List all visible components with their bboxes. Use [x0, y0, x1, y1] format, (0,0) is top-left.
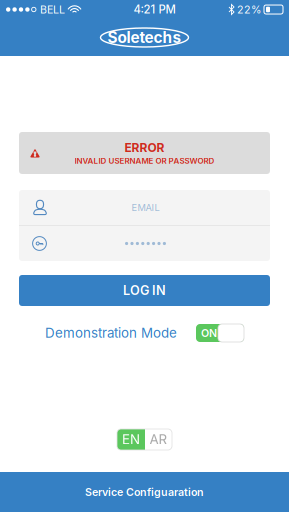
- staticText: ERROR: [124, 140, 164, 155]
- button[interactable]: Demonstration Mode toggle: [196, 324, 244, 342]
- staticText: 22%: [237, 3, 261, 16]
- staticText: EMAIL: [131, 202, 159, 213]
- staticText: INVALID USERNAME OR PASSWORD: [74, 156, 214, 166]
- staticText: EN: [122, 431, 140, 447]
- staticText: AR: [149, 431, 167, 447]
- staticText: Demonstration Mode: [45, 325, 177, 341]
- button[interactable]: Service Configuaration: [0, 472, 289, 512]
- staticText: BELL: [40, 3, 65, 16]
- button[interactable]: AR: [145, 429, 172, 450]
- staticText: Soletechs: [107, 28, 181, 47]
- staticText: Service Configuaration: [85, 485, 204, 498]
- staticText: ON: [201, 326, 217, 339]
- button[interactable]: LOG IN: [19, 275, 270, 306]
- button[interactable]: EN: [117, 429, 145, 450]
- staticText: LOG IN: [123, 283, 166, 298]
- staticText: 4:21 PM: [133, 3, 175, 16]
